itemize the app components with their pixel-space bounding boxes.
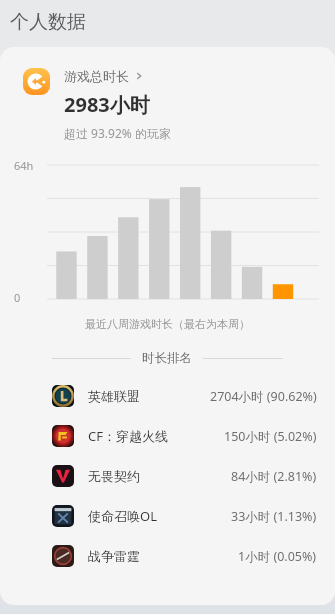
other: Game total time <box>23 68 50 95</box>
staticText: 0 <box>14 290 21 305</box>
staticText: CF：穿越火线 <box>88 427 168 445</box>
button[interactable]: 使命召唤OL <box>0 496 335 536</box>
staticText: 超过 93.92% 的玩家 <box>64 125 171 141</box>
staticText: 游戏总时长 <box>64 68 129 84</box>
button[interactable]: 英雄联盟 <box>0 376 335 416</box>
button[interactable]: Game total time <box>0 68 335 141</box>
staticText: 150小时 (5.02%) <box>224 428 317 445</box>
staticText: 64h <box>14 158 34 173</box>
staticText: 2704小时 (90.62%) <box>210 388 317 405</box>
staticText: 2983小时 <box>64 91 150 118</box>
staticText: 个人数据 <box>10 10 86 34</box>
staticText: 最近八周游戏时长（最右为本周） <box>0 317 335 331</box>
staticText: 英雄联盟 <box>88 388 140 404</box>
staticText: 无畏契约 <box>88 468 140 484</box>
staticText: 1小时 (0.05%) <box>238 548 317 565</box>
staticText: 使命召唤OL <box>88 507 157 525</box>
button[interactable]: CF：穿越火线 <box>0 416 335 456</box>
button[interactable]: 无畏契约 <box>0 456 335 496</box>
staticText: 84小时 (2.81%) <box>231 468 317 485</box>
staticText: 战争雷霆 <box>88 548 140 564</box>
staticText: 33小时 (1.13%) <box>231 508 317 525</box>
staticText: 时长排名 <box>142 350 192 366</box>
button[interactable]: 战争雷霆 <box>0 536 335 576</box>
